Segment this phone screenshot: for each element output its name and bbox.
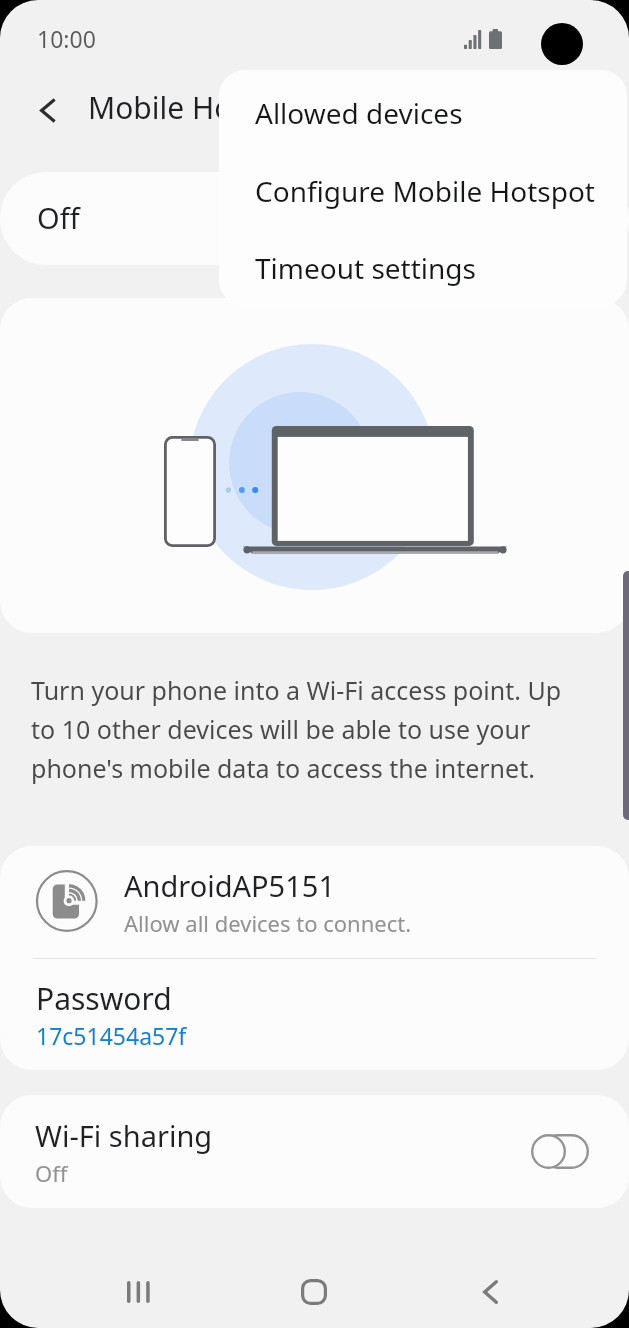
button[interactable]: Off bbox=[0, 172, 629, 265]
staticText: Configure Mobile Hotspot bbox=[255, 172, 595, 210]
staticText: Mobile Hotspot bbox=[88, 87, 306, 128]
staticText: Turn your phone into a Wi-Fi access poin… bbox=[31, 673, 576, 785]
button[interactable]: Back bbox=[402, 1252, 578, 1328]
staticText: Allow all devices to connect. bbox=[124, 908, 412, 938]
button[interactable]: Password bbox=[0, 959, 629, 1070]
button[interactable]: Configure Mobile Hotspot bbox=[219, 152, 627, 230]
button[interactable]: Allowed devices bbox=[219, 74, 627, 152]
button[interactable]: Home bbox=[226, 1252, 402, 1328]
staticText: Timeout settings bbox=[255, 249, 476, 287]
staticText: 10:00 bbox=[37, 23, 96, 54]
button[interactable]: Wi-Fi sharing toggle, off bbox=[531, 1134, 589, 1169]
staticText: Password bbox=[36, 978, 172, 1019]
staticText: Wi-Fi sharing bbox=[35, 1116, 213, 1155]
button[interactable]: Recent apps bbox=[51, 1252, 226, 1328]
staticText: Off bbox=[35, 1158, 68, 1188]
button[interactable]: Navigate up bbox=[13, 76, 81, 144]
staticText: Off bbox=[37, 198, 80, 237]
staticText: Allowed devices bbox=[255, 94, 463, 132]
button[interactable]: Wi-Fi sharing bbox=[0, 1095, 629, 1208]
button[interactable]: Timeout settings bbox=[219, 230, 627, 306]
staticText: AndroidAP5151 bbox=[124, 866, 335, 905]
button[interactable]: AndroidAP5151 bbox=[0, 846, 629, 958]
staticText: 17c51454a57f bbox=[36, 1020, 187, 1051]
